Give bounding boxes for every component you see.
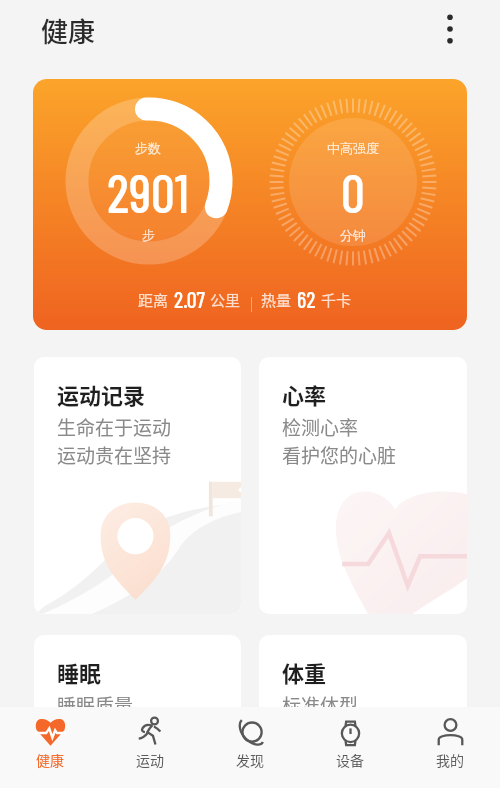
staticText: 睡眠质量	[57, 691, 134, 719]
button[interactable]: 我的	[400, 707, 500, 770]
staticText: 健康	[36, 750, 64, 770]
staticText: 设备	[336, 750, 364, 770]
staticText: 体重	[282, 656, 327, 688]
staticText: 热量	[261, 289, 292, 311]
staticText: 睡眠	[57, 656, 102, 688]
button[interactable]: 心率	[259, 357, 467, 614]
staticText: 中高强度	[327, 140, 379, 156]
staticText: 检测心率	[282, 413, 359, 441]
button[interactable]: More options	[432, 11, 468, 47]
staticText: 分钟	[340, 227, 366, 243]
staticText: 2.07	[174, 286, 205, 312]
staticText: 公里	[210, 289, 241, 311]
staticText: 千卡	[321, 289, 352, 311]
staticText: 步数	[135, 140, 161, 156]
staticText: 标准体型	[282, 691, 359, 719]
button[interactable]: 睡眠	[34, 635, 241, 788]
button[interactable]: 设备	[300, 707, 400, 770]
staticText: 发现	[236, 750, 264, 770]
staticText: 62	[297, 286, 316, 312]
button[interactable]: 发现	[200, 707, 300, 770]
staticText: 步	[142, 227, 155, 243]
staticText: 心率	[282, 378, 327, 410]
staticText: 看护您的心脏	[282, 441, 397, 469]
staticText: 距离	[138, 289, 169, 311]
staticText: 生命在于运动	[57, 413, 172, 441]
button[interactable]: 步数	[33, 79, 467, 330]
button[interactable]: 运动	[100, 707, 200, 770]
button[interactable]: 体重	[259, 635, 467, 788]
staticText: 运动	[136, 750, 164, 770]
staticText: 我的	[436, 750, 464, 770]
button[interactable]: 运动记录	[34, 357, 241, 614]
staticText: 2901	[107, 160, 189, 224]
staticText: 运动贵在坚持	[57, 441, 172, 469]
staticText: 0	[341, 160, 365, 224]
button[interactable]: 健康	[0, 707, 100, 770]
staticText: 运动记录	[57, 378, 146, 410]
staticText: 健康	[41, 11, 95, 50]
